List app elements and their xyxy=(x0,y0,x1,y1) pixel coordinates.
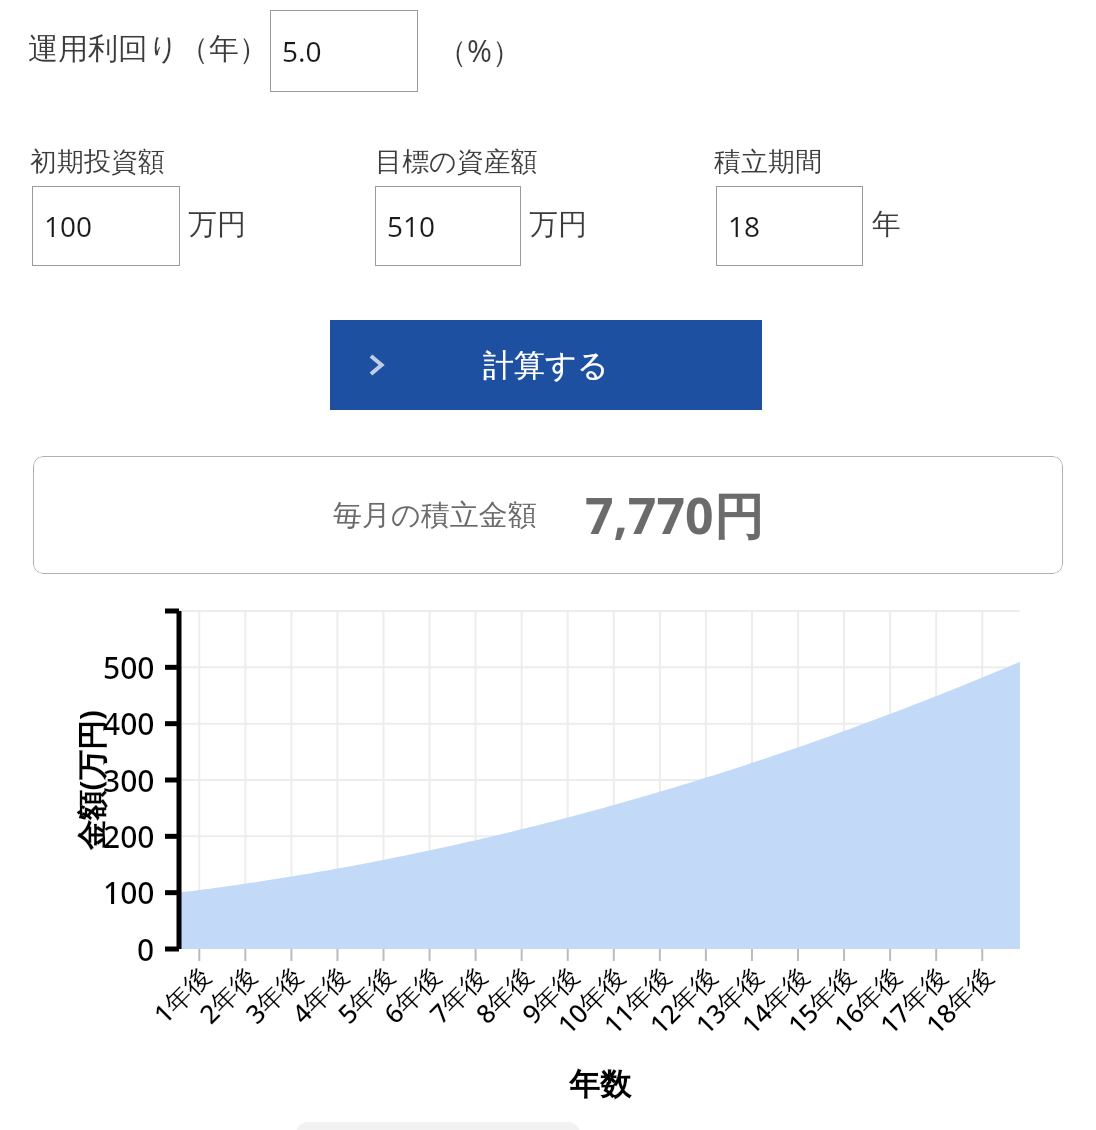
button[interactable]: 100 xyxy=(32,186,180,266)
staticText: （%） xyxy=(437,30,522,71)
staticText: 目標の資産額 xyxy=(375,145,538,179)
staticText: 510 xyxy=(387,207,436,245)
staticText: 計算する xyxy=(483,346,609,385)
button[interactable]: 毎月の積立金額 xyxy=(33,456,1063,574)
staticText: 5.0 xyxy=(282,32,322,70)
staticText: 運用利回り（年） xyxy=(28,30,269,68)
staticText: 毎月の積立金額 xyxy=(333,497,537,534)
button[interactable]: 計算する xyxy=(330,320,762,410)
button[interactable]: 18 xyxy=(716,186,863,266)
staticText: 年 xyxy=(872,206,901,243)
button[interactable]: 510 xyxy=(375,186,521,266)
staticText: 7,770円 xyxy=(585,481,764,549)
staticText: 初期投資額 xyxy=(30,145,165,179)
staticText: 万円 xyxy=(529,206,587,243)
staticText: 18 xyxy=(728,207,761,245)
staticText: 積立期間 xyxy=(714,145,822,179)
button[interactable]: 5.0 xyxy=(270,10,418,92)
staticText: 100 xyxy=(44,207,93,245)
staticText: 万円 xyxy=(188,206,246,243)
